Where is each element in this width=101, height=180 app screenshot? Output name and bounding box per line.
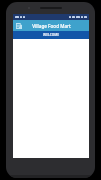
button[interactable]: Open navigation menu — [15, 22, 23, 30]
staticText: Village Food Mart — [32, 23, 71, 29]
staticText: WELCOME — [43, 33, 59, 37]
button[interactable]: WELCOME — [13, 31, 89, 39]
